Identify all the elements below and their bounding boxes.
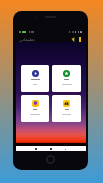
button[interactable] (21, 95, 49, 122)
button[interactable]: Volume (71, 36, 76, 43)
button[interactable]: Back (32, 146, 39, 152)
button[interactable] (52, 95, 81, 122)
button[interactable]: Recent apps (62, 146, 69, 152)
button[interactable]: Home button (46, 155, 55, 164)
button[interactable] (21, 65, 49, 92)
button[interactable]: تطبيقاتي (19, 36, 35, 42)
button[interactable]: Home (47, 146, 54, 152)
staticText: تطبيقاتي (19, 37, 35, 42)
button[interactable] (52, 65, 81, 92)
button[interactable]: More options (77, 36, 82, 43)
